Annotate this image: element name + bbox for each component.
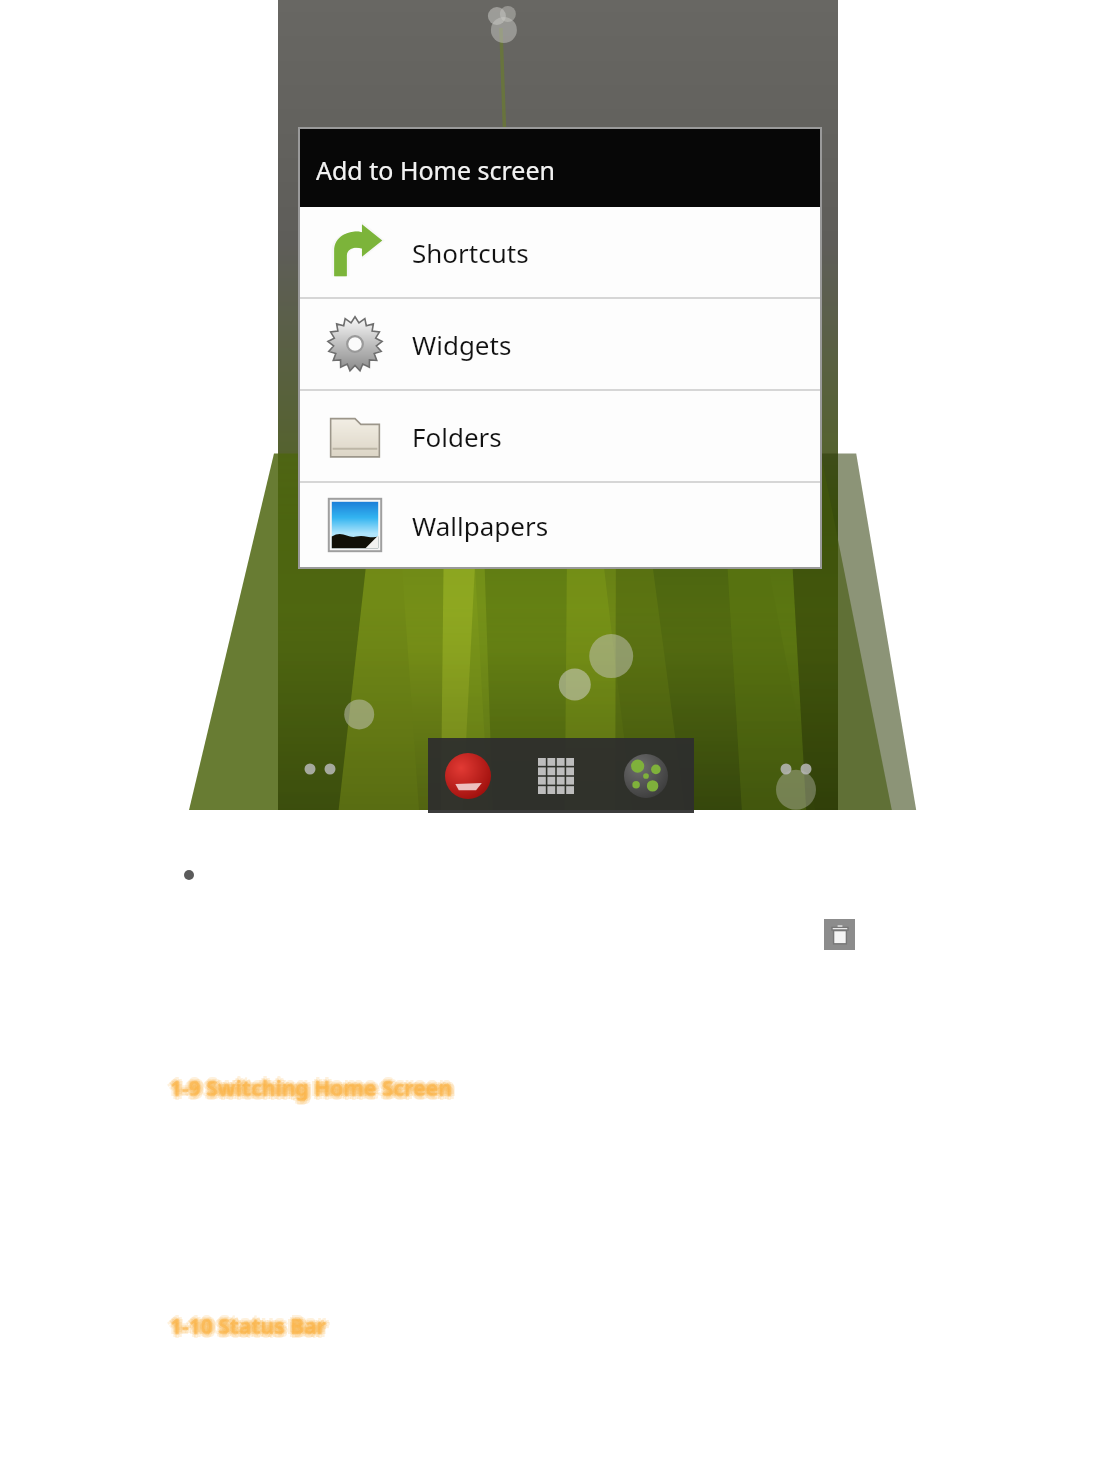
staticText: 1-10 Status Bar <box>174 1312 331 1341</box>
staticText: Add to Home screen <box>316 153 555 187</box>
button[interactable]: Shortcuts <box>300 207 820 297</box>
staticText: 1-10 Status Bar <box>170 1308 327 1337</box>
staticText: 1-9 Switching Home Screen <box>171 1075 454 1104</box>
staticText: 1-9 Switching Home Screen <box>166 1074 449 1103</box>
staticText: 1-10 Status Bar <box>168 1315 325 1344</box>
staticText: 1-9 Switching Home Screen <box>171 1073 454 1102</box>
staticText: 1-9 Switching Home Screen <box>168 1077 451 1106</box>
staticText: 1-9 Switching Home Screen <box>170 1070 453 1099</box>
staticText: 1-9 Switching Home Screen <box>168 1072 451 1101</box>
staticText: 1-9 Switching Home Screen <box>170 1078 453 1107</box>
staticText: 1-10 Status Bar <box>168 1310 325 1339</box>
button[interactable]: All apps <box>532 752 580 800</box>
staticText: Wallpapers <box>412 508 549 543</box>
button[interactable]: Folders <box>300 391 820 481</box>
staticText: 1-10 Status Bar <box>169 1311 326 1340</box>
button[interactable]: Wallpapers <box>300 483 820 567</box>
staticText: 1-10 Status Bar <box>170 1312 327 1341</box>
button[interactable]: Widgets <box>300 299 820 389</box>
staticText: 1-9 Switching Home Screen <box>173 1077 456 1106</box>
staticText: 1-9 Switching Home Screen <box>169 1073 452 1102</box>
button[interactable]: Browser <box>622 752 670 800</box>
staticText: 1-9 Switching Home Screen <box>174 1074 457 1103</box>
staticText: 1-10 Status Bar <box>169 1313 326 1342</box>
staticText: 1-9 Switching Home Screen <box>170 1074 453 1103</box>
staticText: Folders <box>412 419 502 454</box>
button[interactable]: Delete <box>824 919 855 950</box>
staticText: 1-9 Switching Home Screen <box>173 1072 456 1101</box>
staticText: 1-10 Status Bar <box>171 1311 328 1340</box>
staticText: 1-10 Status Bar <box>173 1310 330 1339</box>
staticText: 1-10 Status Bar <box>170 1316 327 1345</box>
button[interactable]: Lenovo Shop <box>444 752 492 800</box>
staticText: 1-10 Status Bar <box>171 1313 328 1342</box>
staticText: 1-9 Switching Home Screen <box>169 1075 452 1104</box>
staticText: Shortcuts <box>412 235 529 270</box>
staticText: 1-10 Status Bar <box>166 1312 323 1341</box>
staticText: Widgets <box>412 327 512 362</box>
staticText: 1-10 Status Bar <box>173 1315 330 1344</box>
